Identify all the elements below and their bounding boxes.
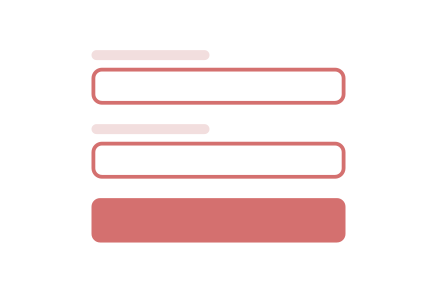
button[interactable]: Submit bbox=[91, 198, 345, 242]
button[interactable]: Second field bbox=[91, 142, 345, 179]
button[interactable]: First field bbox=[91, 68, 345, 105]
